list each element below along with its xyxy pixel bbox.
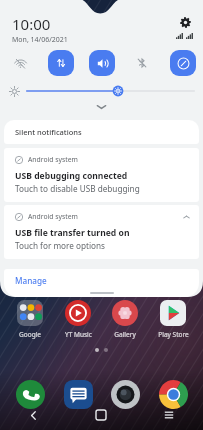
button[interactable]: Silent notifications <box>4 120 199 144</box>
button[interactable]: Camera <box>105 374 145 414</box>
button[interactable]: Wi-Fi <box>7 50 33 76</box>
button[interactable]: Back <box>0 400 67 430</box>
staticText: Touch for more options <box>15 240 105 251</box>
staticText: Android system <box>28 155 78 164</box>
staticText: YT Music <box>65 330 92 339</box>
button[interactable]: Settings <box>177 14 193 30</box>
button[interactable]: Android system <box>4 148 199 202</box>
staticText: USB file transfer turned on <box>15 227 130 239</box>
staticText: Google <box>19 330 41 339</box>
button[interactable]: Home <box>67 400 135 430</box>
staticText: Gallery <box>114 330 136 339</box>
button[interactable]: Recents <box>135 400 203 430</box>
staticText: Mon, 14/06/2021 <box>12 35 68 45</box>
staticText: USB debugging connected <box>15 170 128 182</box>
button[interactable]: Manage <box>4 269 199 297</box>
button[interactable]: Expand quick settings <box>0 102 203 112</box>
button[interactable]: Do not disturb <box>170 50 196 76</box>
button[interactable]: Bluetooth <box>129 50 155 76</box>
staticText: Touch to disable USB debugging <box>15 183 140 194</box>
staticText: Android system <box>28 212 78 221</box>
button[interactable]: Messages <box>58 374 98 414</box>
button[interactable]: Play Store <box>151 299 195 339</box>
button[interactable]: Google <box>8 299 52 339</box>
staticText: 10:00 <box>12 14 51 34</box>
button[interactable]: Phone <box>10 374 50 414</box>
button[interactable]: Gallery <box>103 299 147 339</box>
staticText: Silent notifications <box>15 127 82 137</box>
button[interactable]: Mobile data <box>48 50 74 76</box>
button[interactable]: Android system <box>4 205 199 259</box>
staticText: Manage <box>15 275 47 286</box>
button[interactable]: Chrome <box>153 374 193 414</box>
staticText: Play Store <box>158 330 189 339</box>
button[interactable]: Sound <box>89 50 115 76</box>
button[interactable]: YT Music <box>56 299 100 339</box>
